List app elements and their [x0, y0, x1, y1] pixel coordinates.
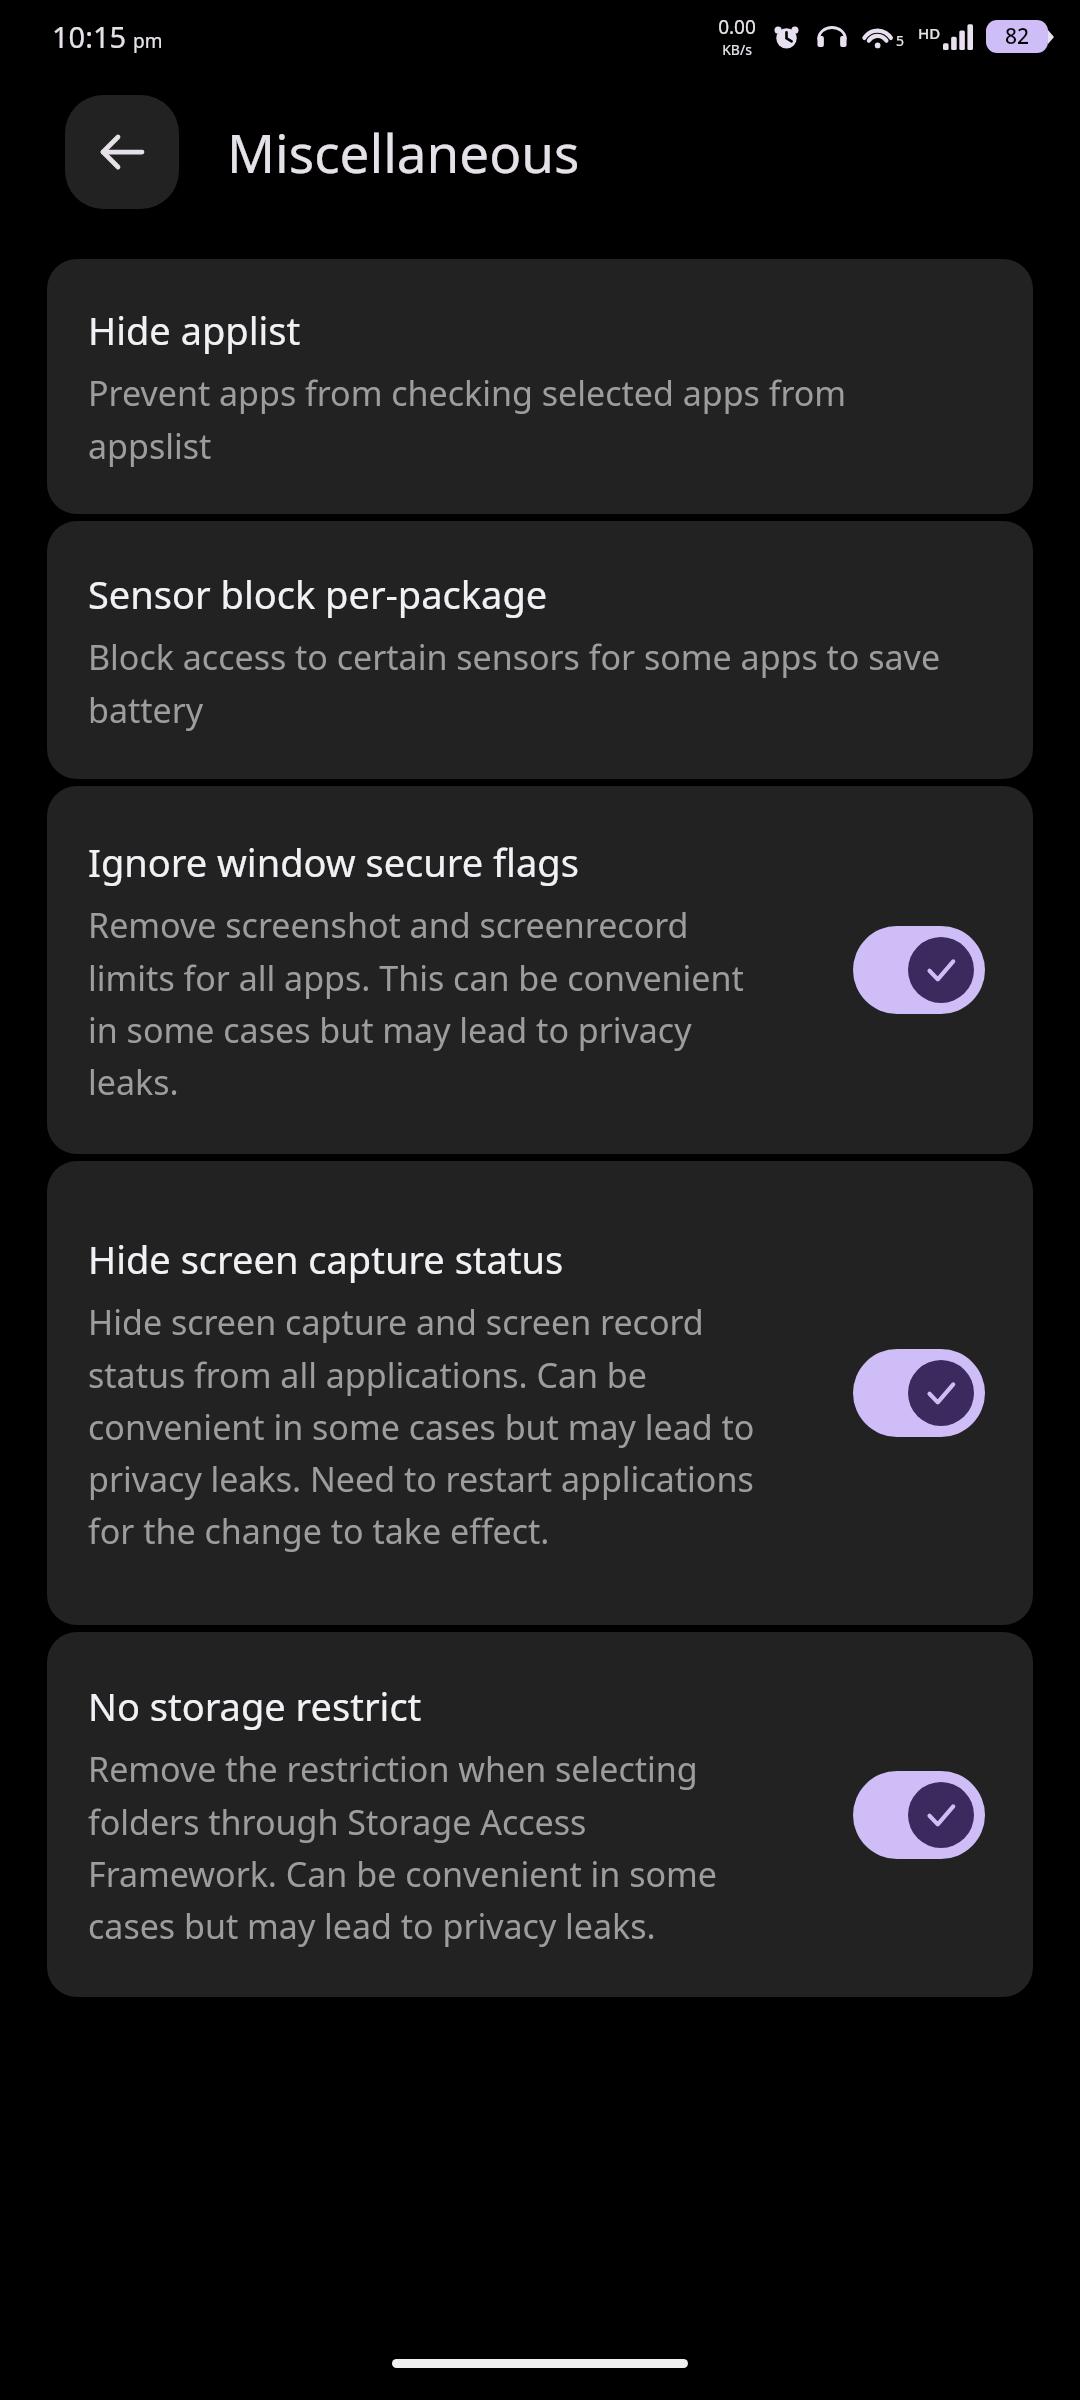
- staticText: HD: [918, 23, 941, 43]
- staticText: No storage restrict: [88, 1680, 422, 1732]
- staticText: 82: [1005, 22, 1030, 51]
- staticText: Hide screen capture status: [88, 1233, 564, 1285]
- button[interactable]: Toggle setting: [853, 926, 985, 1014]
- staticText: Hide applist: [88, 304, 301, 356]
- staticText: Remove screenshot and screenrecord limit…: [88, 902, 773, 1105]
- staticText: 10:15: [52, 17, 127, 56]
- button[interactable]: Toggle setting: [853, 1349, 985, 1437]
- button[interactable]: Toggle setting: [853, 1771, 985, 1859]
- button[interactable]: No storage restrict: [47, 1632, 1033, 1997]
- staticText: Remove the restriction when selecting fo…: [88, 1746, 773, 1949]
- staticText: Sensor block per-package: [88, 568, 548, 620]
- button[interactable]: Hide applist: [47, 259, 1033, 514]
- staticText: 5: [896, 31, 905, 50]
- staticText: Miscellaneous: [227, 116, 580, 188]
- staticText: Ignore window secure flags: [88, 836, 579, 888]
- staticText: pm: [133, 28, 163, 54]
- staticText: Prevent apps from checking selected apps…: [88, 370, 973, 469]
- button[interactable]: Back: [65, 95, 179, 209]
- button[interactable]: Ignore window secure flags: [47, 786, 1033, 1154]
- staticText: Block access to certain sensors for some…: [88, 634, 973, 733]
- button[interactable]: Sensor block per-package: [47, 521, 1033, 779]
- staticText: KB/s: [722, 40, 752, 59]
- button[interactable]: Hide screen capture status: [47, 1161, 1033, 1625]
- staticText: Hide screen capture and screen record st…: [88, 1299, 773, 1554]
- staticText: 0.00: [718, 14, 756, 40]
